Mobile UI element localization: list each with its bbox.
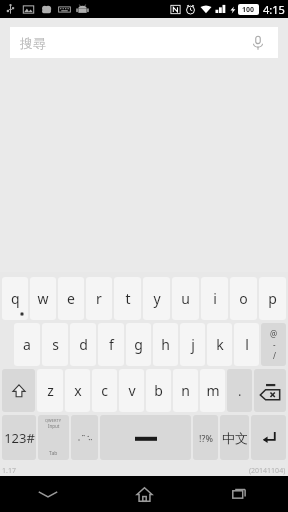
button[interactable]: u xyxy=(172,277,199,320)
button[interactable]: r xyxy=(86,277,112,320)
staticText: 搜尋 xyxy=(20,35,46,51)
button[interactable]: . xyxy=(227,369,252,412)
button[interactable]: v xyxy=(119,369,144,412)
button[interactable]: Symbols at dash slash xyxy=(261,323,286,366)
button[interactable]: Enter xyxy=(251,415,286,460)
button[interactable]: x xyxy=(65,369,90,412)
staticText: Tab xyxy=(49,450,58,457)
button[interactable]: 中文 xyxy=(220,415,249,460)
staticText: (20141104) xyxy=(249,466,286,476)
staticText: n xyxy=(181,381,190,400)
button[interactable]: l xyxy=(234,323,259,366)
staticText: u xyxy=(181,289,190,308)
button[interactable]: Hide keyboard xyxy=(0,476,96,512)
button[interactable]: e xyxy=(58,277,84,320)
staticText: i xyxy=(213,289,217,308)
button[interactable]: k xyxy=(207,323,232,366)
button[interactable]: c xyxy=(92,369,117,412)
button[interactable]: 123# xyxy=(2,415,36,460)
staticText: QWERTY xyxy=(45,418,62,423)
staticText: 1.17 xyxy=(2,466,16,476)
staticText: !?% xyxy=(199,432,213,444)
button[interactable]: h xyxy=(153,323,178,366)
button[interactable]: Punctuation xyxy=(71,415,98,460)
button[interactable]: g xyxy=(126,323,151,366)
button[interactable]: a xyxy=(14,323,40,366)
staticText: - xyxy=(273,339,276,350)
staticText: h xyxy=(161,335,170,354)
staticText: 100 xyxy=(242,5,255,15)
button[interactable]: p xyxy=(259,277,286,320)
staticText: v xyxy=(128,381,136,400)
staticText: b xyxy=(154,381,163,400)
staticText: 中文 xyxy=(222,430,248,446)
button[interactable]: b xyxy=(146,369,171,412)
button[interactable]: q xyxy=(2,277,28,320)
button[interactable]: Shift xyxy=(2,369,35,412)
button[interactable]: z xyxy=(37,369,63,412)
staticText: o xyxy=(239,289,248,308)
button[interactable]: Recent apps xyxy=(192,476,288,512)
staticText: d xyxy=(79,335,88,354)
staticText: a xyxy=(23,335,31,354)
staticText: m xyxy=(206,381,220,400)
staticText: @ xyxy=(270,328,278,339)
staticText: / xyxy=(273,350,276,361)
staticText: 123# xyxy=(4,429,35,447)
staticText: j xyxy=(191,335,195,354)
staticText: 4:15 xyxy=(263,2,285,17)
button[interactable]: s xyxy=(42,323,68,366)
staticText: t xyxy=(125,289,131,308)
button[interactable]: t xyxy=(114,277,141,320)
button[interactable]: y xyxy=(143,277,170,320)
staticText: p xyxy=(268,289,277,308)
button[interactable]: Delete xyxy=(254,369,286,412)
button[interactable]: n xyxy=(173,369,198,412)
button[interactable]: Voice search xyxy=(248,33,268,53)
button[interactable]: f xyxy=(98,323,124,366)
staticText: l xyxy=(245,335,249,354)
button[interactable]: j xyxy=(180,323,205,366)
staticText: c xyxy=(101,381,108,400)
staticText: y xyxy=(153,289,161,308)
button[interactable]: Space xyxy=(100,415,191,460)
button[interactable]: !?% xyxy=(193,415,218,460)
staticText: e xyxy=(67,289,75,308)
button[interactable]: 搜尋 xyxy=(10,27,278,58)
button[interactable]: m xyxy=(200,369,225,412)
staticText: Input xyxy=(48,423,60,429)
staticText: r xyxy=(96,289,102,308)
button[interactable]: i xyxy=(201,277,228,320)
staticText: f xyxy=(109,335,114,354)
staticText: w xyxy=(37,289,49,308)
button[interactable]: QWERTY input Tab xyxy=(38,415,69,460)
staticText: x xyxy=(74,381,82,400)
button[interactable]: o xyxy=(230,277,257,320)
staticText: k xyxy=(216,335,224,354)
staticText: z xyxy=(47,381,54,400)
staticText: g xyxy=(134,335,143,354)
button[interactable]: d xyxy=(70,323,96,366)
staticText: . xyxy=(238,382,242,400)
button[interactable]: Home xyxy=(96,476,192,512)
button[interactable]: w xyxy=(30,277,56,320)
staticText: s xyxy=(52,335,59,354)
staticText: q xyxy=(11,289,20,308)
